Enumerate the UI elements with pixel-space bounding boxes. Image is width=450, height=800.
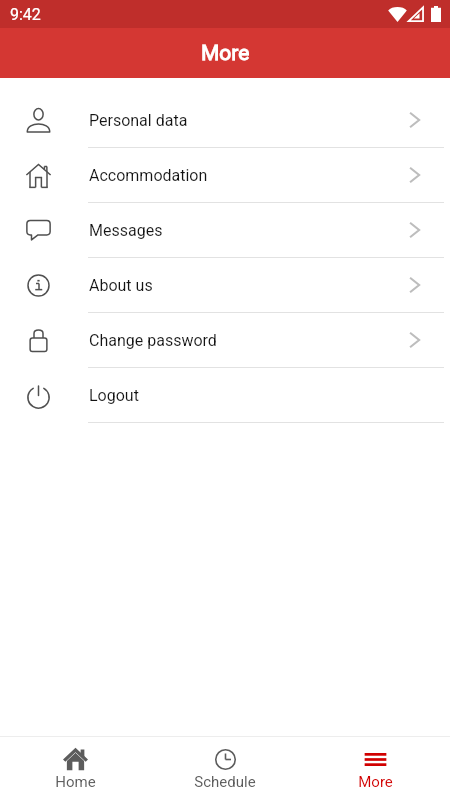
staticText: 9:42 — [10, 5, 41, 24]
staticText: Schedule — [194, 773, 256, 791]
button[interactable]: Logout — [0, 368, 450, 423]
staticText: Logout — [89, 386, 139, 405]
button[interactable]: Personal data — [0, 93, 450, 148]
staticText: Change password — [89, 331, 217, 350]
button[interactable]: More — [300, 737, 450, 800]
staticText: Home — [55, 773, 96, 791]
button[interactable]: Change password — [0, 313, 450, 368]
button[interactable]: Accommodation — [0, 148, 450, 203]
button[interactable]: Messages — [0, 203, 450, 258]
button[interactable]: About us — [0, 258, 450, 313]
staticText: Messages — [89, 221, 163, 240]
button[interactable]: Schedule — [150, 737, 300, 800]
staticText: About us — [89, 276, 153, 295]
staticText: Personal data — [89, 111, 188, 130]
staticText: Accommodation — [89, 166, 208, 185]
staticText: More — [201, 41, 250, 66]
button[interactable]: Home — [0, 737, 150, 800]
staticText: More — [358, 773, 393, 791]
